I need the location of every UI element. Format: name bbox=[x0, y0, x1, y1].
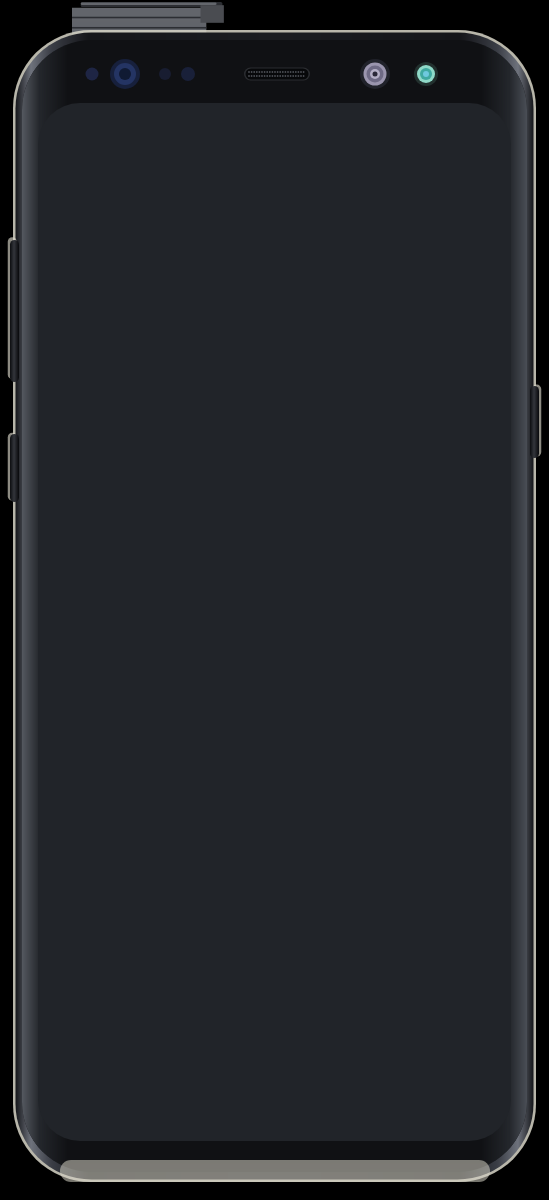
button[interactable]: Galaxy phone device mockup with blank sc… bbox=[0, 0, 549, 1200]
